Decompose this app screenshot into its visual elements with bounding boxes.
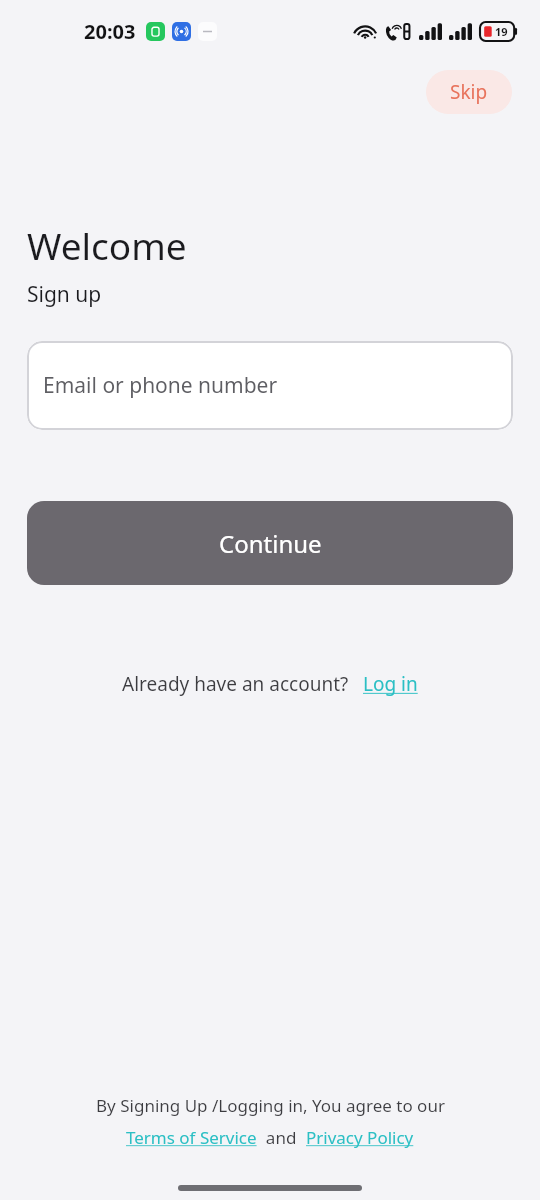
staticText: Welcome	[27, 220, 187, 270]
button[interactable]: Log in	[363, 671, 418, 697]
staticText: Log in	[363, 671, 418, 697]
other: Wi-Fi	[355, 23, 377, 41]
other: Battery 19 percent	[480, 22, 518, 41]
button[interactable]: Skip	[426, 70, 512, 114]
staticText: and	[257, 1126, 306, 1149]
staticText: Email or phone number	[43, 371, 278, 400]
button[interactable]: Continue	[27, 501, 513, 585]
staticText: Terms of Service	[126, 1126, 257, 1149]
staticText: By Signing Up /Logging in, You agree to …	[96, 1094, 445, 1117]
staticText: 20:03	[84, 18, 136, 45]
button[interactable]: Privacy Policy	[306, 1126, 414, 1149]
other: Call over Wi-Fi	[385, 22, 411, 41]
staticText: Skip	[450, 79, 488, 105]
staticText: Continue	[219, 527, 322, 560]
staticText: Privacy Policy	[306, 1126, 414, 1149]
staticText: Already have an account?	[122, 671, 349, 697]
button[interactable]: Email or phone number	[27, 341, 513, 430]
other: Signal	[419, 23, 442, 40]
staticText: Sign up	[27, 280, 102, 309]
other: Signal	[449, 23, 472, 40]
button[interactable]: Terms of Service	[126, 1126, 257, 1149]
staticText: 19	[495, 24, 508, 39]
